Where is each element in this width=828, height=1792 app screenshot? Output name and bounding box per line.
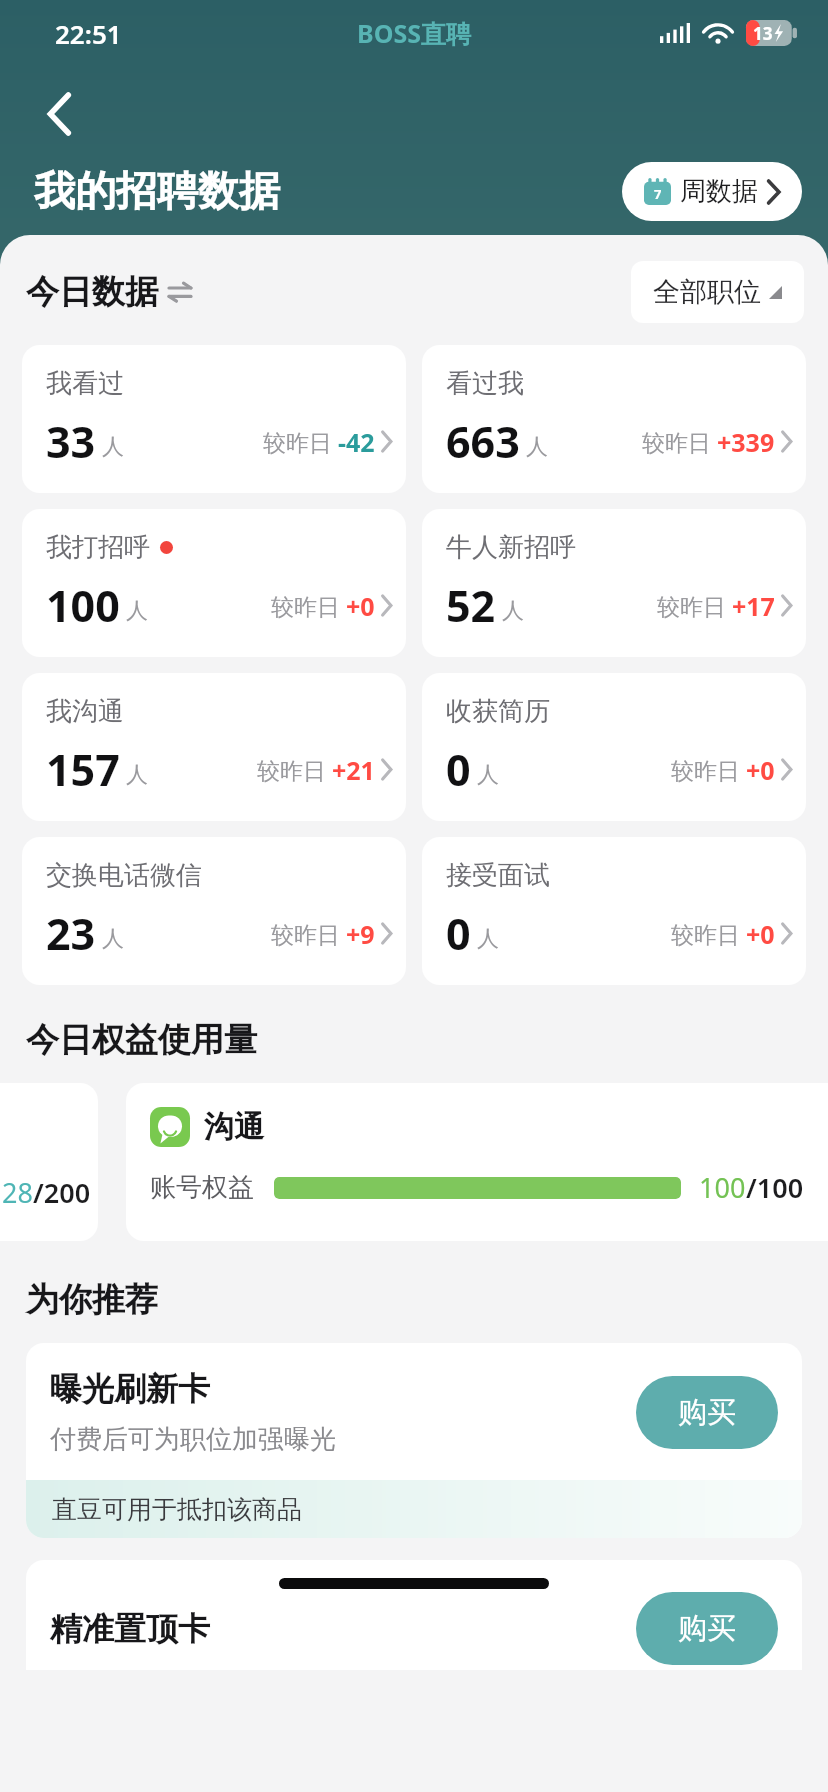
staticText: 为你推荐 [26, 1279, 158, 1321]
staticText: 较昨日 [263, 426, 338, 457]
staticText: 7 [654, 185, 662, 203]
staticText: +9 [346, 917, 375, 951]
staticText: 663 [446, 412, 520, 471]
staticText: 较昨日 [671, 754, 746, 785]
staticText: 较昨日 [642, 426, 717, 457]
staticText: +0 [746, 753, 775, 787]
staticText: 我打招呼 [46, 531, 150, 564]
button[interactable]: 购买 [636, 1592, 778, 1665]
staticText: 人 [126, 761, 148, 789]
staticText: 我看过 [46, 367, 124, 400]
staticText: 52 [446, 576, 496, 635]
staticText: 人 [477, 761, 499, 789]
staticText: 今日权益使用量 [26, 1019, 257, 1061]
staticText: BOSS直聘 [357, 16, 471, 50]
staticText: 沟通 [204, 1108, 264, 1146]
staticText: 人 [526, 433, 548, 461]
button[interactable]: 沟通 [126, 1083, 828, 1241]
button[interactable]: 我打招呼 [22, 509, 406, 657]
staticText: 收获简历 [446, 695, 550, 728]
staticText: 我沟通 [46, 695, 124, 728]
staticText: 人 [477, 925, 499, 953]
staticText: 较昨日 [657, 590, 732, 621]
staticText: 购买 [678, 1394, 736, 1431]
button[interactable]: 购买 [636, 1376, 778, 1449]
staticText: 全部职位 [653, 275, 761, 309]
staticText: +21 [332, 753, 375, 787]
button[interactable]: 我看过 [22, 345, 406, 493]
staticText: -42 [338, 425, 375, 459]
button[interactable]: 收获简历 [422, 673, 806, 821]
staticText: +0 [746, 917, 775, 951]
staticText: 较昨日 [271, 918, 346, 949]
staticText: 我的招聘数据 [34, 166, 280, 218]
staticText: +17 [732, 589, 775, 623]
staticText: 33 [46, 412, 96, 471]
staticText: 较昨日 [271, 590, 346, 621]
staticText: 157 [46, 740, 120, 799]
button[interactable]: 看过我 [422, 345, 806, 493]
staticText: 较昨日 [257, 754, 332, 785]
button[interactable]: 曝光刷新卡 [26, 1343, 802, 1538]
staticText: 人 [102, 433, 124, 461]
button[interactable]: 接受面试 [422, 837, 806, 985]
button[interactable]: 牛人新招呼 [422, 509, 806, 657]
staticText: 今日数据 [26, 271, 158, 313]
button[interactable]: Back [32, 86, 88, 142]
button[interactable]: 7 [622, 162, 802, 221]
staticText: 购买 [678, 1610, 736, 1647]
staticText: 人 [102, 925, 124, 953]
button[interactable]: 精准置顶卡 [26, 1560, 802, 1670]
button[interactable]: 全部职位 [631, 261, 804, 323]
staticText: 0 [446, 740, 471, 799]
staticText: /200 [33, 1174, 91, 1211]
staticText: 100 [699, 1169, 746, 1206]
staticText: 28 [2, 1174, 33, 1211]
staticText: 直豆可用于抵扣该商品 [52, 1494, 302, 1525]
button[interactable]: 交换电话微信 [22, 837, 406, 985]
staticText: 13 [753, 22, 773, 45]
staticText: 看过我 [446, 367, 524, 400]
staticText: 交换电话微信 [46, 859, 202, 892]
staticText: 100 [46, 576, 120, 635]
staticText: 精准置顶卡 [50, 1609, 636, 1649]
staticText: 人 [126, 597, 148, 625]
button[interactable]: 今日数据 [26, 271, 191, 313]
staticText: 周数据 [680, 175, 758, 208]
staticText: 付费后可为职位加强曝光 [50, 1423, 336, 1456]
staticText: +0 [346, 589, 375, 623]
staticText: 22:51 [55, 16, 122, 51]
staticText: 牛人新招呼 [446, 531, 576, 564]
staticText: 曝光刷新卡 [50, 1369, 210, 1409]
staticText: 账号权益 [150, 1171, 254, 1204]
button[interactable]: 我沟通 [22, 673, 406, 821]
staticText: 0 [446, 904, 471, 963]
staticText: 23 [46, 904, 96, 963]
staticText: /100 [746, 1169, 804, 1206]
staticText: +339 [717, 425, 775, 459]
staticText: 较昨日 [671, 918, 746, 949]
staticText: 接受面试 [446, 859, 550, 892]
staticText: 人 [502, 597, 524, 625]
button[interactable]: 28 [0, 1083, 98, 1241]
